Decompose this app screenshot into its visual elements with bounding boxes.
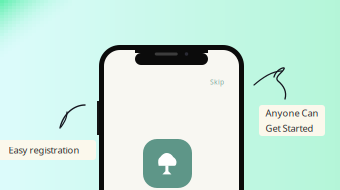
- staticText: Anyone Can: [265, 107, 318, 119]
- button[interactable]: Skip: [207, 76, 227, 88]
- staticText: Easy registration: [8, 144, 79, 156]
- button[interactable]: Easy registration: [0, 140, 96, 160]
- button[interactable]: Anyone Can: [259, 105, 325, 136]
- staticText: Get Started: [265, 122, 313, 134]
- staticText: Skip: [210, 78, 224, 86]
